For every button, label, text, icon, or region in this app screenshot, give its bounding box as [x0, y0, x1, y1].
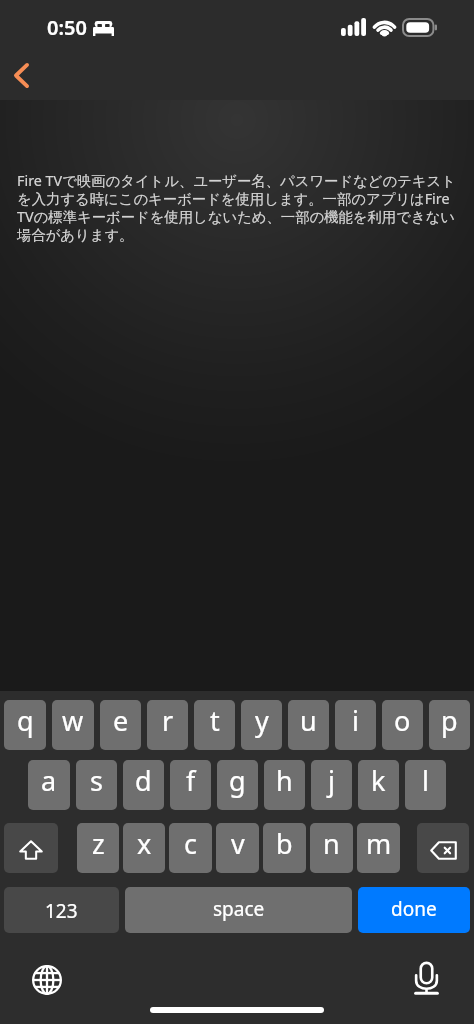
- button[interactable]: h: [264, 760, 305, 810]
- staticText: space: [213, 896, 265, 922]
- staticText: q: [17, 702, 34, 739]
- staticText: l: [422, 762, 429, 799]
- button[interactable]: Back: [1, 55, 41, 95]
- button[interactable]: w: [52, 700, 94, 750]
- button[interactable]: x: [123, 823, 165, 873]
- staticText: j: [328, 762, 335, 799]
- button[interactable]: Delete: [417, 823, 469, 873]
- button[interactable]: t: [194, 700, 235, 750]
- staticText: c: [184, 825, 197, 862]
- staticText: g: [229, 762, 246, 799]
- button[interactable]: n: [310, 823, 353, 873]
- button[interactable]: Dictation: [402, 954, 451, 1003]
- staticText: b: [276, 825, 293, 862]
- button[interactable]: Shift: [4, 823, 58, 873]
- staticText: a: [41, 762, 57, 799]
- staticText: s: [90, 762, 103, 799]
- staticText: h: [276, 762, 293, 799]
- button[interactable]: m: [357, 823, 400, 873]
- button[interactable]: b: [263, 823, 306, 873]
- button[interactable]: z: [77, 823, 119, 873]
- button[interactable]: i: [335, 700, 376, 750]
- button[interactable]: p: [429, 700, 470, 750]
- button[interactable]: done: [358, 887, 470, 933]
- button[interactable]: y: [241, 700, 282, 750]
- staticText: 123: [45, 898, 78, 924]
- button[interactable]: k: [358, 760, 399, 810]
- button[interactable]: v: [216, 823, 259, 873]
- staticText: t: [210, 702, 220, 739]
- button[interactable]: o: [382, 700, 423, 750]
- button[interactable]: a: [28, 760, 70, 810]
- staticText: k: [371, 762, 386, 799]
- staticText: done: [391, 896, 437, 922]
- staticText: v: [231, 825, 245, 862]
- staticText: y: [255, 702, 269, 739]
- button[interactable]: u: [288, 700, 329, 750]
- staticText: m: [366, 825, 392, 862]
- staticText: 0:50: [47, 14, 87, 41]
- button[interactable]: j: [311, 760, 352, 810]
- button[interactable]: d: [123, 760, 164, 810]
- button[interactable]: c: [169, 823, 212, 873]
- button[interactable]: q: [4, 700, 46, 750]
- staticText: x: [137, 825, 152, 862]
- staticText: f: [186, 762, 196, 799]
- staticText: i: [352, 702, 359, 739]
- staticText: r: [162, 702, 174, 739]
- staticText: o: [394, 702, 411, 739]
- staticText: u: [300, 702, 317, 739]
- staticText: d: [135, 762, 152, 799]
- button[interactable]: e: [100, 700, 141, 750]
- staticText: n: [323, 825, 340, 862]
- staticText: Fire TVで映画のタイトル、ユーザー名、パスワードなどのテキストを入力する時…: [17, 171, 468, 244]
- button[interactable]: f: [170, 760, 211, 810]
- button[interactable]: Change keyboard language: [22, 955, 71, 1004]
- button[interactable]: 123: [4, 887, 119, 933]
- staticText: z: [92, 825, 105, 862]
- button[interactable]: g: [217, 760, 258, 810]
- button[interactable]: space: [125, 887, 352, 933]
- staticText: p: [441, 702, 458, 739]
- staticText: e: [113, 702, 129, 739]
- button[interactable]: r: [147, 700, 188, 750]
- button[interactable]: l: [405, 760, 446, 810]
- button[interactable]: s: [76, 760, 117, 810]
- staticText: w: [62, 702, 84, 739]
